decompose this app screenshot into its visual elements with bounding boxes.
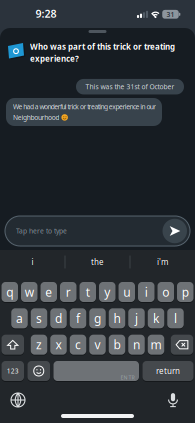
staticText: q	[6, 284, 13, 300]
staticText: j	[135, 310, 138, 326]
staticText: v	[94, 337, 100, 353]
button[interactable]: d	[50, 308, 67, 328]
button[interactable]: r	[60, 282, 76, 302]
button[interactable]: l	[167, 308, 184, 328]
staticText: i	[145, 284, 148, 300]
staticText: experience?	[30, 53, 79, 64]
button[interactable]: j	[128, 308, 145, 328]
staticText: Who was part of this trick or treating	[30, 41, 175, 52]
button[interactable]: i	[0, 252, 64, 272]
button[interactable]: w	[21, 282, 37, 302]
staticText: i	[31, 257, 33, 267]
button[interactable]: Emoji	[27, 361, 50, 381]
button[interactable]: n	[128, 335, 145, 355]
button[interactable]: t	[79, 282, 96, 302]
staticText: e	[45, 284, 52, 300]
button[interactable]: c	[70, 335, 86, 355]
button[interactable]: Dictation	[168, 392, 178, 408]
button[interactable]: Tap here to type	[5, 216, 190, 246]
button[interactable]: 123	[1, 361, 24, 381]
staticText: z	[36, 337, 42, 353]
button[interactable]: x	[50, 335, 67, 355]
staticText: EN TR	[120, 374, 134, 381]
staticText: h	[113, 310, 120, 326]
button[interactable]: g	[89, 308, 106, 328]
staticText: o	[162, 284, 169, 300]
staticText: l	[174, 310, 177, 326]
staticText: c	[75, 337, 81, 353]
staticText: 9:28	[35, 6, 56, 21]
button[interactable]: q	[1, 282, 18, 302]
button[interactable]: e	[40, 282, 57, 302]
staticText: n	[133, 337, 140, 353]
button[interactable]: s	[31, 308, 47, 328]
staticText: i'm	[157, 257, 168, 267]
button[interactable]: k	[148, 308, 164, 328]
staticText: b	[113, 337, 120, 353]
staticText: 31	[166, 10, 174, 19]
button[interactable]: v	[89, 335, 106, 355]
staticText: f	[76, 310, 80, 326]
staticText: We had a wonderful trick or treating exp…	[13, 102, 156, 111]
button[interactable]: return	[142, 361, 193, 381]
staticText: Neighbourhood	[13, 113, 59, 122]
staticText: w	[25, 284, 34, 300]
staticText: r	[66, 284, 71, 300]
staticText: m	[150, 337, 161, 353]
staticText: return	[156, 366, 180, 376]
staticText: Tap here to type	[16, 227, 67, 235]
button[interactable]: Delete	[171, 335, 193, 355]
button[interactable]: f	[70, 308, 86, 328]
button[interactable]: the	[65, 252, 129, 272]
button[interactable]: u	[118, 282, 135, 302]
button[interactable]: p	[177, 282, 193, 302]
button[interactable]: Space	[53, 361, 139, 381]
button[interactable]: a	[11, 308, 28, 328]
staticText: p	[182, 284, 189, 300]
button[interactable]: m	[148, 335, 164, 355]
button[interactable]: i	[138, 282, 154, 302]
button[interactable]: h	[109, 308, 125, 328]
staticText: 123	[7, 367, 19, 375]
button[interactable]: Next keyboard	[10, 392, 26, 408]
staticText: g	[94, 310, 101, 326]
staticText: y	[104, 284, 110, 300]
button[interactable]: z	[31, 335, 47, 355]
button[interactable]: Shift	[1, 335, 24, 355]
button[interactable]: b	[109, 335, 125, 355]
staticText: x	[55, 337, 61, 353]
staticText: u	[123, 284, 130, 300]
staticText: k	[153, 310, 159, 326]
staticText: a	[16, 310, 23, 326]
staticText: This was the 31st of October	[85, 82, 174, 91]
button[interactable]: o	[157, 282, 174, 302]
button[interactable]: i'm	[130, 252, 194, 272]
button[interactable]: y	[99, 282, 115, 302]
staticText: s	[36, 310, 42, 326]
staticText: the	[91, 257, 104, 267]
button[interactable]: Send	[162, 219, 187, 243]
staticText: t	[86, 284, 90, 300]
staticText: d	[55, 310, 62, 326]
